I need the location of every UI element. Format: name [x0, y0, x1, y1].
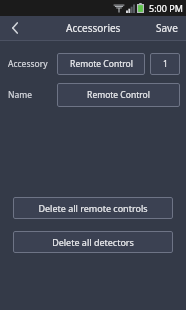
staticText: 1 — [163, 58, 168, 70]
staticText: Save — [156, 21, 178, 35]
staticText: 5:00 PM — [149, 2, 183, 14]
staticText: Name — [8, 89, 57, 101]
button[interactable]: Remote Control — [57, 53, 145, 75]
staticText: Remote Control — [70, 58, 133, 70]
button[interactable]: Remote Control — [57, 83, 180, 107]
button[interactable]: Save — [148, 16, 186, 40]
staticText: Delete all remote controls — [38, 202, 148, 214]
staticText: Remote Control — [87, 89, 150, 101]
button[interactable]: 1 — [150, 53, 180, 75]
staticText: Accessories — [66, 21, 121, 35]
button[interactable]: Delete all detectors — [13, 231, 173, 253]
button[interactable]: Back — [0, 16, 30, 40]
button[interactable]: Delete all remote controls — [13, 197, 173, 219]
staticText: Delete all detectors — [52, 236, 134, 248]
staticText: Accessory — [8, 58, 57, 70]
